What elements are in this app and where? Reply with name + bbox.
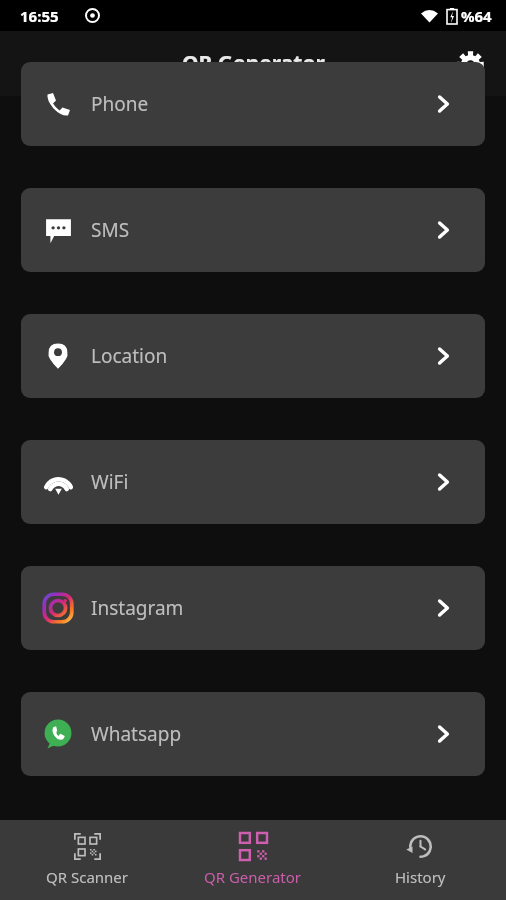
button[interactable]: WiFi — [21, 440, 485, 524]
staticText: QR Scanner — [46, 867, 128, 887]
button[interactable]: Settings — [446, 40, 494, 88]
button[interactable]: Location — [21, 314, 485, 398]
staticText: WiFi — [91, 469, 129, 495]
button[interactable]: Instagram — [21, 566, 485, 650]
staticText: Location — [91, 343, 168, 369]
button[interactable]: QR Generator — [173, 820, 333, 900]
button[interactable]: QR Scanner — [7, 820, 167, 900]
staticText: History — [395, 867, 446, 887]
staticText: Instagram — [91, 595, 184, 621]
button[interactable]: Phone — [21, 62, 485, 146]
button[interactable]: SMS — [21, 188, 485, 272]
button[interactable]: Whatsapp — [21, 692, 485, 776]
staticText: %64 — [461, 6, 492, 26]
staticText: QR Generator — [182, 49, 325, 78]
staticText: Phone — [91, 91, 149, 117]
staticText: SMS — [91, 217, 130, 243]
staticText: QR Generator — [204, 867, 302, 887]
staticText: 16:55 — [20, 6, 59, 26]
button[interactable]: History — [340, 820, 500, 900]
staticText: Whatsapp — [91, 721, 182, 747]
